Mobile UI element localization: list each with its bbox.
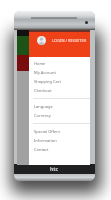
staticText: Shopping Cart (34, 79, 61, 84)
staticText: Language (34, 104, 53, 109)
button[interactable]: Shopping Cart (29, 77, 90, 86)
staticText: My Account (34, 70, 56, 75)
staticText: Special Offers (34, 129, 60, 134)
staticText: Information (34, 138, 57, 143)
button[interactable]: LOGIN / REGISTER (52, 36, 87, 45)
button[interactable]: Contact (29, 145, 90, 154)
staticText: Currency (34, 113, 51, 118)
button[interactable]: Language (29, 102, 90, 111)
button[interactable]: My Account (29, 68, 90, 77)
button[interactable]: Home (29, 59, 90, 68)
button[interactable]: Special Offers (29, 127, 90, 136)
staticText: Checkout (34, 88, 52, 93)
button[interactable]: Currency (29, 111, 90, 120)
staticText: htc (50, 166, 59, 173)
staticText: Contact (34, 147, 49, 152)
button[interactable]: Checkout (29, 86, 90, 95)
button[interactable]: Information (29, 136, 90, 145)
staticText: Home (34, 61, 46, 66)
staticText: LOGIN / REGISTER (52, 38, 87, 43)
